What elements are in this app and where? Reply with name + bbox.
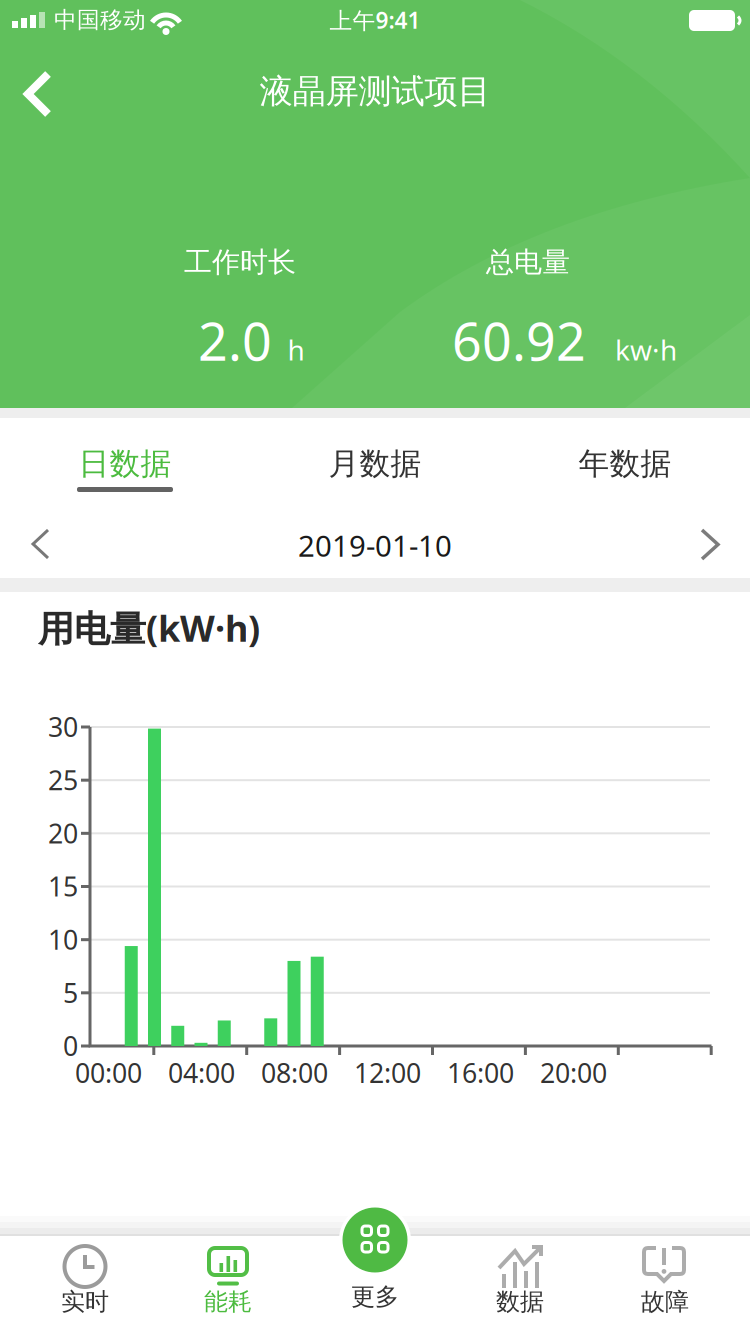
staticText: 实时 bbox=[61, 1287, 109, 1316]
staticText: 12:00 bbox=[354, 1055, 421, 1090]
staticText: 工作时长 bbox=[184, 245, 296, 279]
staticText: 00:00 bbox=[75, 1055, 142, 1090]
staticText: 年数据 bbox=[578, 445, 671, 483]
button[interactable]: 故障 bbox=[590, 1238, 740, 1334]
staticText: 20:00 bbox=[540, 1055, 607, 1090]
staticText: 5 bbox=[63, 975, 78, 1010]
staticText: 30 bbox=[48, 709, 78, 744]
staticText: 上午9:41 bbox=[329, 5, 420, 35]
staticText: 10 bbox=[48, 922, 78, 957]
button[interactable]: 数据 bbox=[445, 1238, 595, 1334]
staticText: 15 bbox=[48, 868, 78, 904]
button[interactable]: 月数据 bbox=[250, 418, 500, 504]
staticText: 60.92 bbox=[452, 306, 586, 375]
staticText: 能耗 bbox=[204, 1287, 252, 1316]
staticText: 月数据 bbox=[328, 445, 421, 483]
button[interactable]: 能耗 bbox=[153, 1238, 303, 1334]
button[interactable]: 日数据 bbox=[0, 418, 250, 504]
staticText: 日数据 bbox=[78, 445, 171, 483]
staticText: 2019-01-10 bbox=[298, 526, 452, 565]
staticText: 2.0 bbox=[198, 306, 272, 375]
button[interactable]: 更多 bbox=[300, 1204, 450, 1334]
staticText: 液晶屏测试项目 bbox=[259, 71, 490, 112]
staticText: 故障 bbox=[641, 1287, 689, 1316]
staticText: 数据 bbox=[496, 1287, 544, 1316]
staticText: 16:00 bbox=[447, 1055, 514, 1090]
staticText: kw·h bbox=[615, 331, 677, 368]
staticText: 0 bbox=[63, 1028, 78, 1063]
button[interactable]: 年数据 bbox=[500, 418, 750, 504]
staticText: 08:00 bbox=[261, 1055, 328, 1090]
staticText: h bbox=[287, 331, 304, 368]
staticText: 04:00 bbox=[168, 1055, 235, 1090]
staticText: 25 bbox=[48, 762, 78, 798]
staticText: 用电量(kW·h) bbox=[38, 604, 260, 652]
staticText: 更多 bbox=[351, 1282, 399, 1311]
button[interactable]: 实时 bbox=[10, 1238, 160, 1334]
button[interactable]: 返回 bbox=[0, 58, 76, 128]
staticText: 20 bbox=[48, 815, 78, 851]
button[interactable]: 前一天 bbox=[0, 504, 60, 556]
button[interactable]: 后一天 bbox=[0, 504, 60, 556]
staticText: 总电量 bbox=[486, 245, 570, 279]
staticText: 中国移动 bbox=[54, 6, 146, 34]
